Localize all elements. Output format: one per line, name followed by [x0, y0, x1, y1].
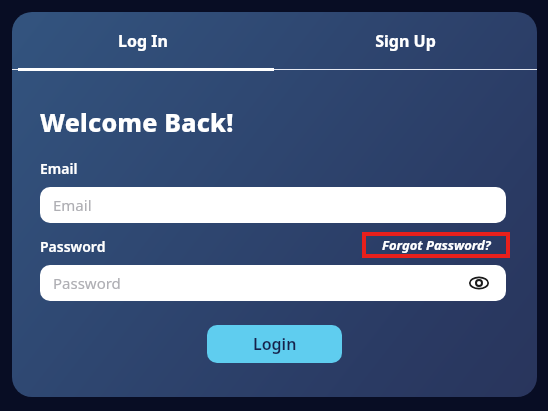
staticText: Sign Up	[375, 30, 436, 52]
staticText: Welcome Back!	[40, 105, 234, 139]
button[interactable]: Sign Up	[274, 12, 537, 70]
staticText: Email	[53, 195, 92, 215]
staticText: Login	[253, 333, 297, 355]
button[interactable]: Email	[40, 187, 506, 223]
button[interactable]: Password	[40, 265, 506, 301]
button[interactable]: Log In	[12, 12, 274, 70]
staticText: Email	[40, 159, 78, 178]
staticText: Password	[53, 273, 121, 293]
button[interactable]: Login	[207, 325, 342, 363]
button[interactable]: Show password	[466, 270, 492, 296]
staticText: Password	[40, 237, 106, 256]
button[interactable]: Forgot Password?	[362, 232, 510, 258]
staticText: Forgot Password?	[382, 236, 491, 254]
staticText: Log In	[118, 30, 168, 52]
